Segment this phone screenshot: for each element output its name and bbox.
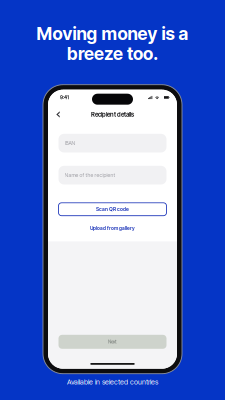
button[interactable]: Back bbox=[52, 109, 64, 120]
staticText: breeze too. bbox=[67, 43, 158, 64]
button[interactable]: Name of the recipient bbox=[58, 166, 166, 184]
staticText: Scan QR code bbox=[96, 206, 129, 212]
staticText: Available in selected countries bbox=[67, 378, 158, 386]
staticText: 9:41 bbox=[60, 94, 69, 100]
staticText: Upload from gallery bbox=[90, 225, 135, 231]
staticText: Recipient details bbox=[91, 111, 134, 118]
button[interactable]: IBAN bbox=[58, 134, 166, 152]
button[interactable]: Scan QR code bbox=[58, 203, 166, 216]
staticText: Name of the recipient bbox=[64, 172, 115, 178]
staticText: Next bbox=[108, 339, 117, 345]
staticText: IBAN bbox=[64, 140, 75, 146]
staticText: Moving money is a bbox=[36, 23, 188, 44]
button[interactable]: Next bbox=[58, 335, 166, 349]
button[interactable]: Upload from gallery bbox=[58, 226, 166, 231]
